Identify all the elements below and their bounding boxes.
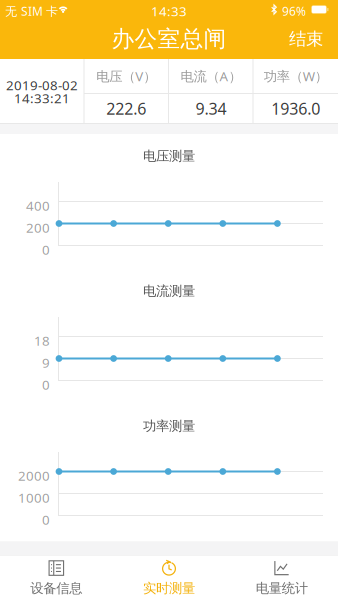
staticText: 实时测量 <box>143 580 195 596</box>
staticText: 功率（W） <box>264 67 328 85</box>
staticText: 9.34 <box>195 98 226 119</box>
staticText: 0 <box>42 241 50 258</box>
staticText: 1000 <box>18 489 50 506</box>
staticText: 设备信息 <box>30 580 82 596</box>
staticText: 电压（V） <box>96 67 156 85</box>
staticText: 222.6 <box>106 98 146 119</box>
button[interactable]: 设备信息 <box>0 556 113 600</box>
staticText: 电流（A） <box>180 67 241 85</box>
staticText: 电量统计 <box>256 580 308 596</box>
staticText: 结束 <box>289 28 323 50</box>
staticText: 2019-08-02 <box>6 76 78 94</box>
staticText: 14:33:21 <box>14 89 70 107</box>
staticText: 1936.0 <box>271 98 320 119</box>
staticText: 14:33 <box>151 2 187 20</box>
staticText: 0 <box>42 376 50 393</box>
staticText: 0 <box>42 511 50 528</box>
staticText: 96% <box>282 3 306 19</box>
staticText: 无 SIM 卡 <box>5 3 58 19</box>
staticText: 9 <box>42 354 50 371</box>
staticText: 2000 <box>18 467 50 484</box>
staticText: 18 <box>34 332 50 349</box>
staticText: 电流测量 <box>143 283 195 299</box>
staticText: 电压测量 <box>143 148 195 164</box>
staticText: 200 <box>26 219 50 236</box>
staticText: 400 <box>26 197 50 214</box>
button[interactable]: 结束 <box>279 24 333 54</box>
button[interactable]: 电量统计 <box>225 556 338 600</box>
staticText: 办公室总闸 <box>111 25 226 53</box>
button[interactable]: 实时测量 <box>113 556 225 600</box>
staticText: 功率测量 <box>143 418 195 434</box>
